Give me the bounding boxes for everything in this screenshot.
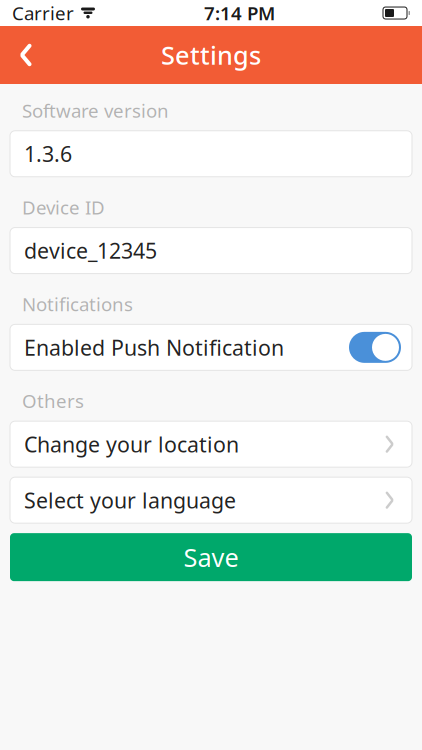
staticText: Enabled Push Notification <box>24 333 284 361</box>
button[interactable]: Change your location <box>10 421 412 467</box>
staticText: Change your location <box>24 430 239 458</box>
staticText: Notifications <box>22 292 133 316</box>
button[interactable]: Select your language <box>10 477 412 523</box>
button[interactable]: Enabled Push Notification <box>10 324 412 370</box>
staticText: Carrier <box>12 1 74 25</box>
staticText: Save <box>183 540 238 574</box>
button[interactable]: Back <box>0 26 52 84</box>
staticText: 7:14 PM <box>204 1 275 25</box>
staticText: Software version <box>22 98 169 123</box>
staticText: device_12345 <box>24 236 157 265</box>
staticText: Select your language <box>24 486 236 514</box>
staticText: Device ID <box>22 195 105 220</box>
staticText: Others <box>22 388 84 413</box>
staticText: Settings <box>161 38 261 72</box>
staticText: 1.3.6 <box>24 140 72 168</box>
button[interactable]: Save <box>10 533 412 581</box>
